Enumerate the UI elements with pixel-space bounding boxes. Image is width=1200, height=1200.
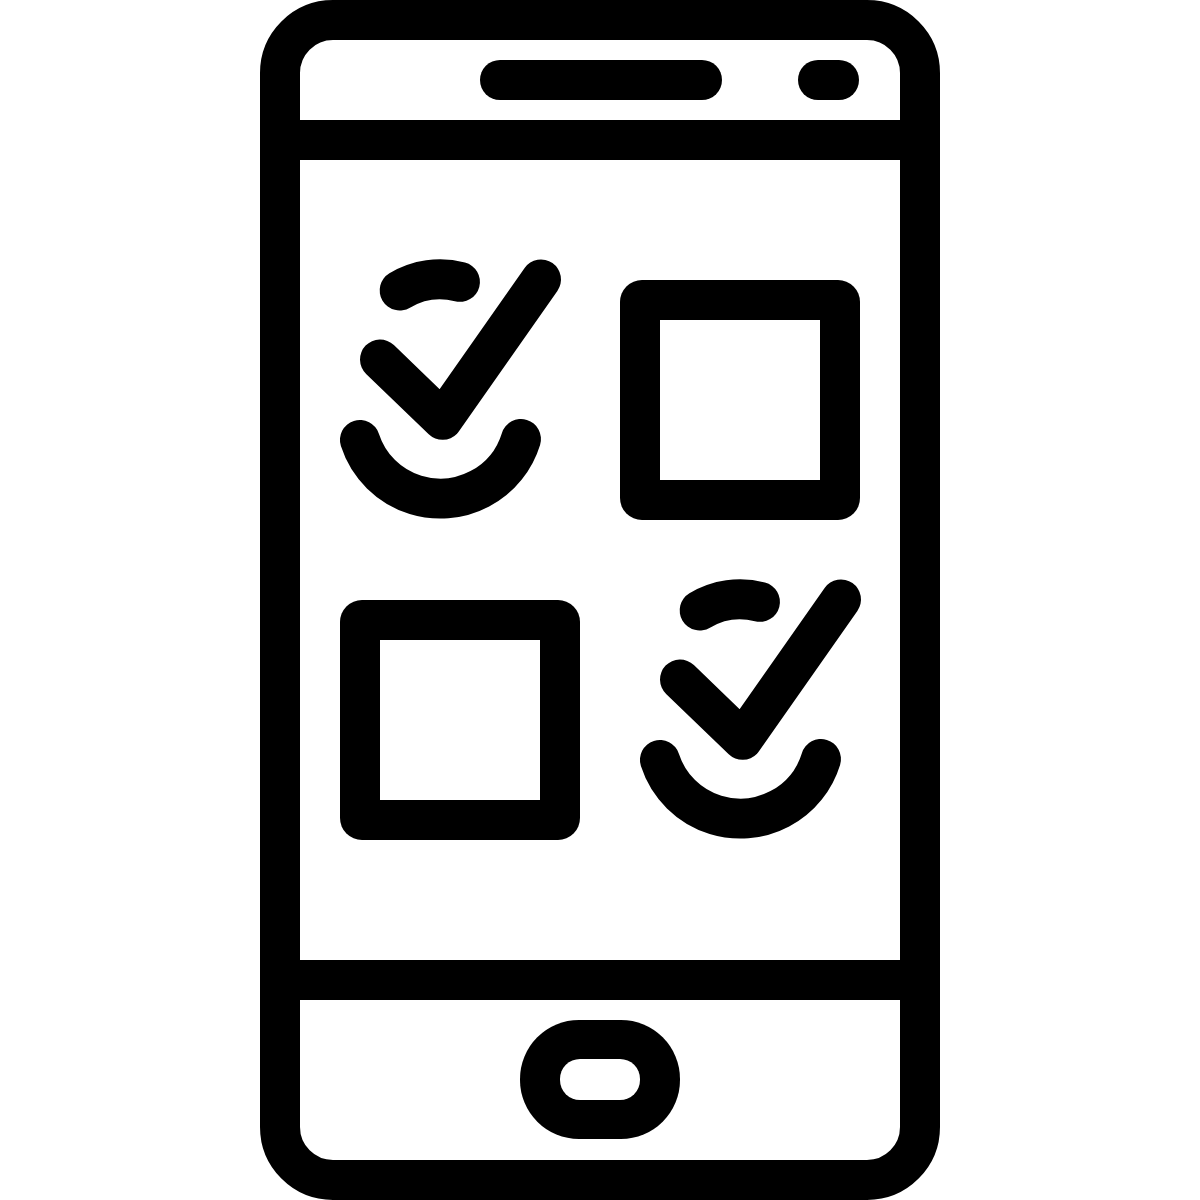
- button[interactable]: Test not run: [620, 280, 860, 520]
- button[interactable]: Test passed: [330, 250, 550, 530]
- button[interactable]: Test not run: [340, 600, 580, 840]
- button[interactable]: Home: [520, 1020, 680, 1139]
- button[interactable]: Test passed: [630, 570, 850, 850]
